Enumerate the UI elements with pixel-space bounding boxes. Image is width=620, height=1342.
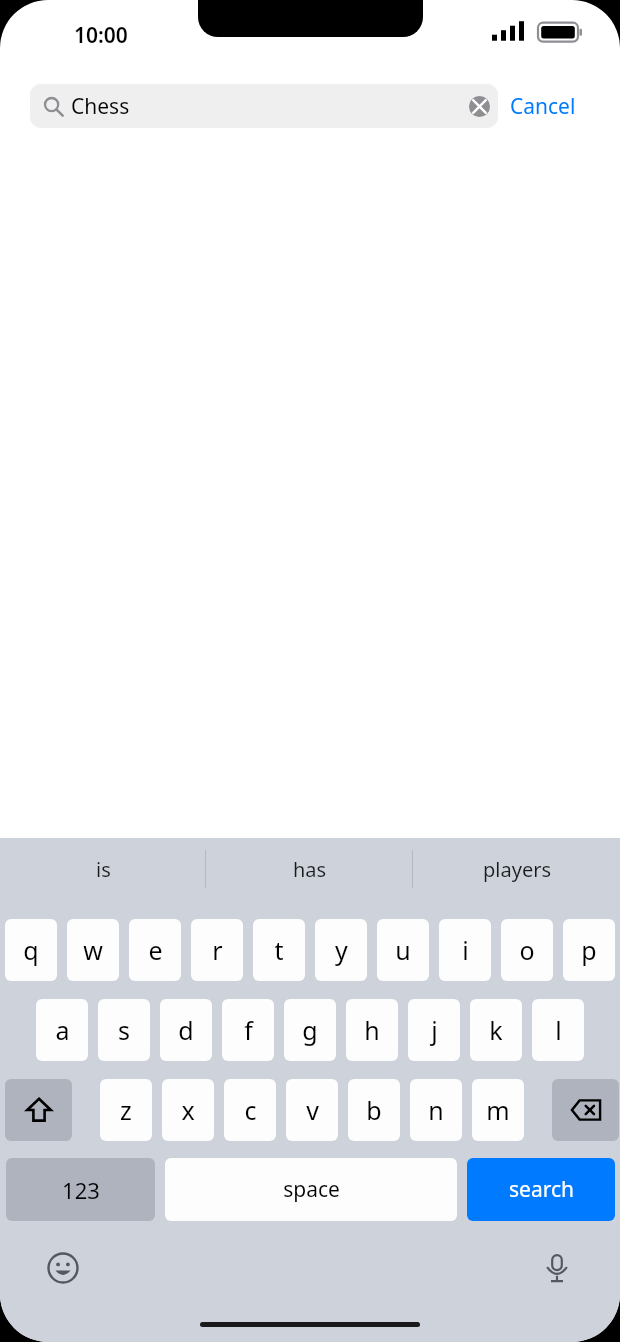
button[interactable]: l bbox=[532, 999, 584, 1061]
button[interactable]: r bbox=[191, 919, 243, 981]
button[interactable]: w bbox=[67, 919, 119, 981]
staticText: l bbox=[555, 1013, 562, 1047]
button[interactable]: b bbox=[348, 1079, 400, 1141]
staticText: u bbox=[395, 933, 411, 967]
staticText: w bbox=[83, 933, 103, 967]
button[interactable]: g bbox=[284, 999, 336, 1061]
button[interactable]: Clear text bbox=[462, 89, 496, 123]
staticText: Chess bbox=[71, 92, 462, 121]
button[interactable]: Backspace bbox=[552, 1079, 619, 1141]
staticText: is bbox=[96, 856, 111, 883]
staticText: c bbox=[244, 1093, 257, 1127]
button[interactable]: Emoji keyboard bbox=[40, 1245, 86, 1291]
button[interactable]: search bbox=[467, 1158, 615, 1221]
staticText: k bbox=[489, 1013, 503, 1047]
button[interactable]: players bbox=[413, 838, 620, 900]
button[interactable]: f bbox=[222, 999, 274, 1061]
staticText: 10:00 bbox=[74, 21, 128, 50]
button[interactable]: e bbox=[129, 919, 181, 981]
button[interactable]: z bbox=[100, 1079, 152, 1141]
staticText: s bbox=[118, 1013, 130, 1047]
button[interactable]: v bbox=[286, 1079, 338, 1141]
staticText: r bbox=[212, 933, 223, 967]
button[interactable]: space bbox=[165, 1158, 457, 1221]
button[interactable]: p bbox=[563, 919, 615, 981]
staticText: b bbox=[366, 1093, 382, 1127]
staticText: players bbox=[483, 856, 551, 883]
button[interactable]: d bbox=[160, 999, 212, 1061]
staticText: v bbox=[306, 1093, 319, 1127]
staticText: g bbox=[302, 1013, 318, 1047]
staticText: search bbox=[509, 1175, 574, 1204]
button[interactable]: n bbox=[410, 1079, 462, 1141]
staticText: o bbox=[519, 933, 535, 967]
button[interactable]: Dictation bbox=[534, 1245, 580, 1291]
button[interactable]: u bbox=[377, 919, 429, 981]
button[interactable]: y bbox=[315, 919, 367, 981]
button[interactable]: j bbox=[408, 999, 460, 1061]
staticText: f bbox=[244, 1013, 253, 1047]
staticText: y bbox=[335, 933, 348, 967]
button[interactable]: 123 bbox=[6, 1158, 155, 1221]
staticText: Cancel bbox=[510, 92, 576, 121]
button[interactable]: Cancel bbox=[498, 84, 588, 128]
staticText: z bbox=[120, 1093, 132, 1127]
button[interactable]: t bbox=[253, 919, 305, 981]
staticText: p bbox=[581, 933, 597, 967]
staticText: a bbox=[55, 1013, 70, 1047]
button[interactable]: h bbox=[346, 999, 398, 1061]
staticText: 123 bbox=[62, 1175, 100, 1205]
staticText: t bbox=[274, 933, 284, 967]
button[interactable]: m bbox=[472, 1079, 524, 1141]
staticText: m bbox=[486, 1093, 510, 1127]
button[interactable]: Chess bbox=[30, 84, 498, 128]
button[interactable]: a bbox=[36, 999, 88, 1061]
staticText: n bbox=[428, 1093, 444, 1127]
button[interactable]: has bbox=[206, 838, 413, 900]
staticText: h bbox=[364, 1013, 380, 1047]
button[interactable]: q bbox=[5, 919, 57, 981]
button[interactable]: Shift bbox=[5, 1079, 72, 1141]
button[interactable]: s bbox=[98, 999, 150, 1061]
button[interactable]: x bbox=[162, 1079, 214, 1141]
button[interactable]: c bbox=[224, 1079, 276, 1141]
button[interactable]: is bbox=[0, 838, 206, 900]
staticText: d bbox=[178, 1013, 194, 1047]
staticText: x bbox=[181, 1093, 195, 1127]
staticText: j bbox=[431, 1013, 438, 1047]
button[interactable]: k bbox=[470, 999, 522, 1061]
button[interactable]: i bbox=[439, 919, 491, 981]
staticText: i bbox=[462, 933, 469, 967]
staticText: has bbox=[293, 856, 327, 883]
staticText: space bbox=[283, 1175, 340, 1204]
button[interactable]: o bbox=[501, 919, 553, 981]
staticText: e bbox=[148, 933, 163, 967]
staticText: q bbox=[23, 933, 39, 967]
